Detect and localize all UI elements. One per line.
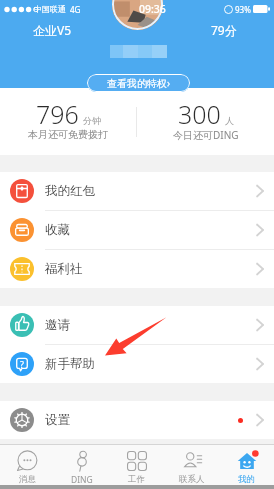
staticText: 查看我的特权›: [107, 76, 171, 90]
button[interactable]: 设置: [0, 401, 274, 439]
button[interactable]: 消息: [0, 445, 54, 485]
staticText: 300: [178, 97, 221, 131]
staticText: 中国联通: [34, 4, 66, 14]
button[interactable]: 查看我的特权›: [87, 74, 190, 92]
staticText: 09:36: [139, 2, 166, 16]
staticText: 联系人: [179, 474, 205, 485]
staticText: 新手帮助: [45, 356, 95, 372]
staticText: 79分: [211, 22, 237, 38]
staticText: 本月还可免费拨打: [28, 128, 108, 141]
button[interactable]: 我的红包: [0, 172, 274, 210]
button[interactable]: 300: [137, 88, 274, 155]
staticText: 796: [36, 97, 79, 131]
button[interactable]: 工作: [109, 445, 164, 485]
button[interactable]: 邀请: [0, 306, 274, 344]
staticText: 收藏: [45, 222, 70, 238]
button[interactable]: DING: [54, 445, 109, 485]
staticText: 工作: [128, 474, 145, 485]
staticText: 4G: [70, 4, 81, 15]
staticText: DING: [71, 474, 93, 485]
button[interactable]: 联系人: [164, 445, 219, 485]
button[interactable]: ?: [0, 345, 274, 383]
staticText: ?: [20, 358, 24, 370]
button[interactable]: 我的: [219, 445, 274, 485]
button[interactable]: 796: [0, 88, 136, 155]
staticText: 人: [225, 115, 234, 126]
staticText: 分钟: [83, 115, 101, 126]
staticText: 消息: [19, 474, 36, 485]
staticText: 我的红包: [45, 183, 95, 199]
staticText: 今日还可DING: [173, 128, 239, 142]
staticText: 企业V5: [33, 22, 72, 38]
staticText: 93%: [235, 4, 251, 15]
staticText: 设置: [45, 412, 70, 428]
staticText: 我的: [238, 474, 255, 485]
staticText: 福利社: [45, 261, 83, 277]
button[interactable]: Profile photo: [112, 0, 163, 30]
button[interactable]: 福利社: [0, 250, 274, 288]
staticText: 邀请: [45, 317, 70, 333]
button[interactable]: 收藏: [0, 211, 274, 249]
